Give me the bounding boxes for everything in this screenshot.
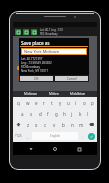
button[interactable]: i	[72, 97, 80, 108]
button[interactable]: p	[88, 97, 96, 108]
button[interactable]: x	[32, 119, 41, 130]
button[interactable]: t	[48, 97, 56, 108]
staticText: Mitten	[49, 92, 59, 96]
button[interactable]: Home	[49, 143, 61, 155]
button[interactable]: Marker	[17, 56, 21, 60]
button[interactable]: h	[60, 108, 68, 119]
button[interactable]: m	[77, 119, 86, 130]
button[interactable]: ,	[24, 130, 31, 142]
staticText: z	[27, 122, 30, 128]
button[interactable]: Cancel	[55, 76, 88, 81]
button[interactable]: Shift	[13, 119, 24, 130]
button[interactable]: OK	[20, 76, 53, 81]
staticText: Save place as	[21, 40, 50, 46]
staticText: u	[67, 100, 70, 106]
staticText: j	[71, 111, 73, 117]
staticText: k	[79, 111, 82, 117]
staticText: o	[83, 100, 86, 106]
staticText: l	[87, 111, 89, 117]
button[interactable]: l	[84, 108, 92, 119]
staticText: Lat: 40.7727397	[21, 57, 43, 61]
button[interactable]: c	[41, 119, 50, 130]
button[interactable]: y	[56, 97, 64, 108]
staticText: n	[71, 122, 74, 128]
button[interactable]: Backspace	[86, 119, 97, 130]
button[interactable]: Recents	[73, 143, 85, 155]
button[interactable]: e	[32, 97, 40, 108]
button[interactable]: Marker	[17, 76, 21, 80]
button[interactable]: Map tool	[15, 29, 21, 35]
staticText: English	[50, 134, 61, 138]
button[interactable]: Back	[25, 143, 37, 155]
button[interactable]: Middleton	[70, 92, 86, 96]
staticText: Lng: -73.98549 283382	[21, 61, 52, 65]
staticText: y	[59, 100, 62, 106]
staticText: m	[79, 122, 84, 128]
staticText: Lat: 40.7 Lng: -73.9	[40, 28, 63, 32]
staticText: FID: Broadway	[40, 32, 58, 36]
staticText: p	[91, 100, 94, 106]
staticText: g	[55, 111, 58, 117]
staticText: x	[35, 122, 38, 128]
button[interactable]: Mitten	[49, 92, 59, 96]
button[interactable]: Map tool	[23, 29, 29, 35]
staticText: OK	[34, 77, 39, 81]
staticText: q	[17, 100, 20, 106]
button[interactable]: d	[36, 108, 44, 119]
staticText: t	[51, 100, 53, 106]
button[interactable]: b	[59, 119, 68, 130]
button[interactable]: ?123	[13, 130, 24, 142]
button[interactable]: n	[68, 119, 77, 130]
button[interactable]: r	[40, 97, 48, 108]
button[interactable]: g	[52, 108, 60, 119]
button[interactable]: v	[50, 119, 59, 130]
staticText: e	[35, 100, 38, 106]
button[interactable]: Map tool	[31, 29, 37, 35]
staticText: Cancel	[67, 77, 77, 81]
staticText: w	[26, 100, 30, 106]
button[interactable]: Midtown	[24, 92, 38, 96]
button[interactable]: Marker	[17, 66, 21, 70]
staticText: h	[63, 111, 66, 117]
button[interactable]: o	[80, 97, 88, 108]
staticText: r	[43, 100, 45, 106]
staticText: ,	[27, 134, 29, 139]
staticText: s	[30, 111, 33, 117]
button[interactable]: Enter	[88, 133, 95, 140]
button[interactable]: u	[64, 97, 72, 108]
button[interactable]: z	[24, 119, 32, 130]
staticText: f	[47, 111, 49, 117]
staticText: Middleton	[70, 92, 86, 96]
staticText: ?123	[15, 134, 22, 138]
staticText: Midtown	[24, 92, 38, 96]
staticText: New York Midtown	[24, 49, 60, 54]
button[interactable]: English	[32, 132, 78, 140]
button[interactable]: w	[23, 97, 32, 108]
button[interactable]: s	[27, 108, 36, 119]
staticText: c	[44, 122, 47, 128]
button[interactable]: j	[68, 108, 76, 119]
button[interactable]: q	[14, 97, 23, 108]
staticText: FID:Broadway	[21, 65, 40, 69]
staticText: a	[21, 111, 24, 117]
staticText: d	[39, 111, 42, 117]
staticText: v	[53, 122, 56, 128]
staticText: i	[75, 100, 77, 106]
staticText: b	[62, 122, 65, 128]
button[interactable]: Marker	[17, 46, 21, 50]
button[interactable]: k	[76, 108, 84, 119]
button[interactable]: New York Midtown	[22, 49, 86, 54]
button[interactable]: a	[18, 108, 27, 119]
staticText: New York, NY 10017	[21, 69, 49, 73]
staticText: .	[82, 134, 84, 139]
button[interactable]: f	[44, 108, 52, 119]
